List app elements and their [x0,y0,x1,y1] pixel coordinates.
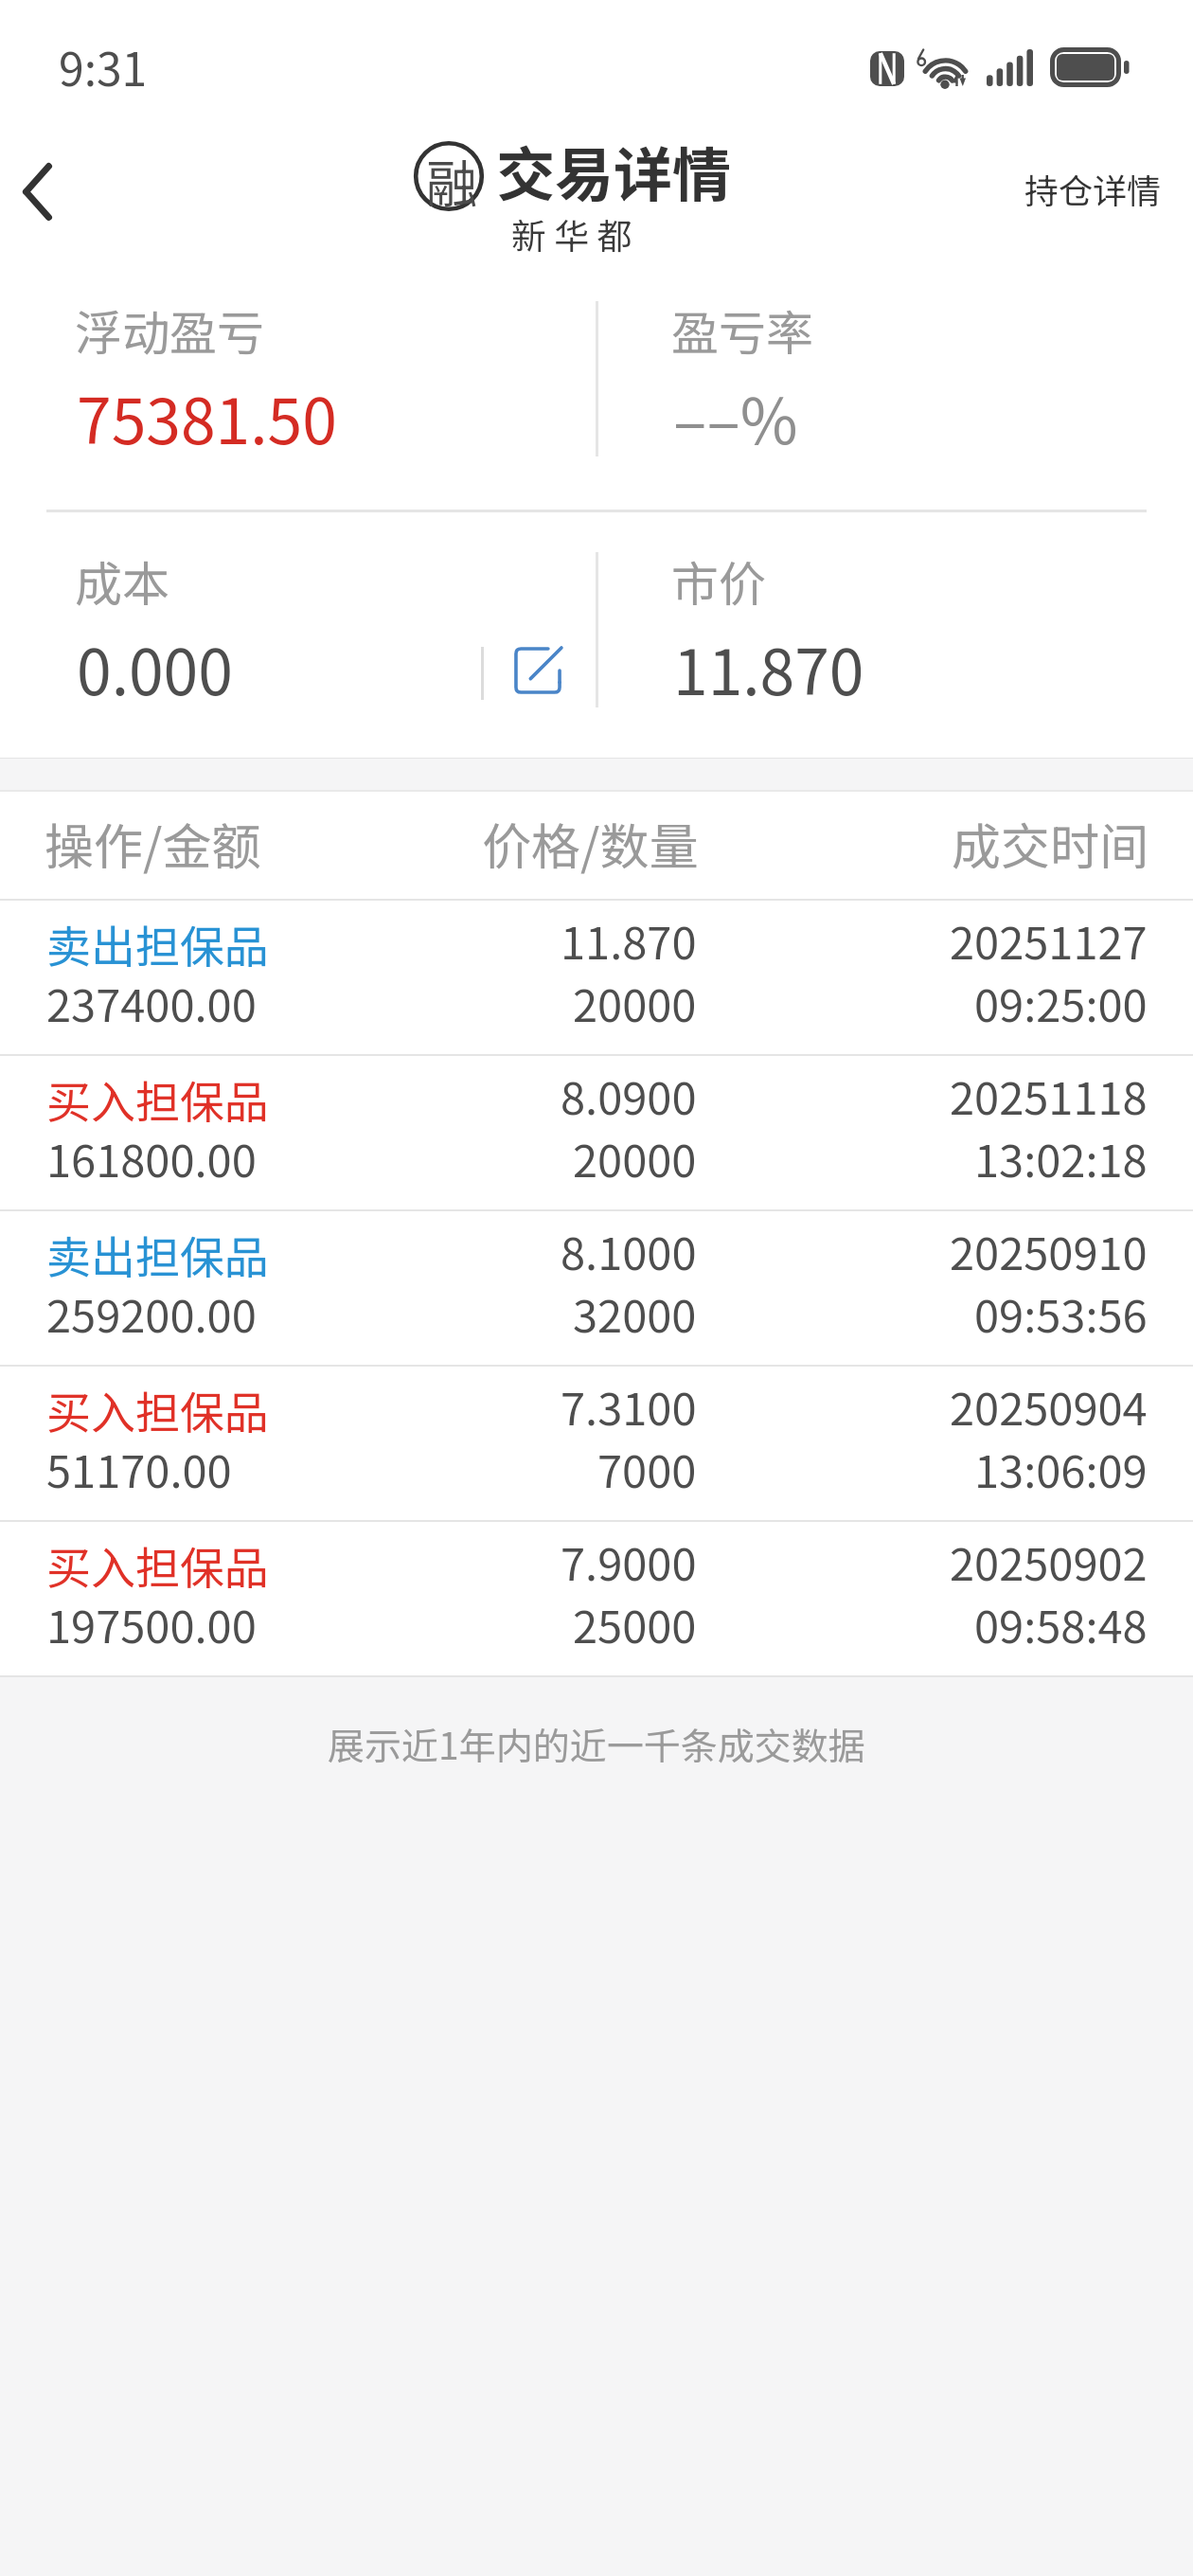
staticText: 161800.00 [46,1125,257,1190]
button[interactable]: 买入担保品 [0,1056,1193,1209]
staticText: 25000 [573,1591,697,1655]
staticText: 75381.50 [77,371,337,462]
staticText: 09:53:56 [974,1280,1148,1345]
staticText: 7000 [597,1436,697,1500]
staticText: 13:06:09 [974,1436,1148,1500]
staticText: 买入担保品 [46,1066,269,1131]
staticText: 持仓详情 [1024,164,1162,213]
staticText: 8.0900 [561,1063,697,1127]
staticText: 20250910 [950,1218,1148,1282]
staticText: 32000 [573,1280,697,1345]
staticText: 237400.00 [46,970,257,1034]
staticText: 买入担保品 [46,1532,269,1597]
button[interactable]: 卖出担保品 [0,1211,1193,1365]
staticText: 卖出担保品 [46,1222,269,1286]
staticText: 20251118 [950,1063,1148,1127]
staticText: ––% [673,371,798,462]
staticText: 20251127 [950,907,1148,972]
button[interactable]: Back [0,125,82,258]
staticText: 8.1000 [561,1218,697,1282]
staticText: 盈亏率 [671,295,813,364]
staticText: 成本 [75,546,169,615]
staticText: 20250902 [950,1529,1148,1593]
staticText: 买入担保品 [46,1377,269,1441]
button[interactable]: Edit cost price [504,636,572,705]
staticText: 0.000 [77,622,233,713]
button[interactable]: 买入担保品 [0,1522,1193,1675]
staticText: 20000 [573,1125,697,1190]
staticText: 价格/数量 [482,808,699,879]
staticText: 11.870 [673,622,864,713]
staticText: 9:31 [59,33,148,99]
staticText: 197500.00 [46,1591,257,1655]
staticText: 20250904 [950,1373,1148,1438]
staticText: 20000 [573,970,697,1034]
staticText: 市价 [671,546,766,615]
button[interactable]: 持仓详情 [989,135,1193,241]
staticText: 展示近1年内的近一千条成交数据 [328,1717,865,1770]
staticText: 交易详情 [496,128,732,213]
staticText: 13:02:18 [974,1125,1148,1190]
staticText: 7.9000 [561,1529,697,1593]
button[interactable]: 买入担保品 [0,1367,1193,1520]
staticText: 浮动盈亏 [75,295,264,364]
staticText: 融 [426,143,477,215]
staticText: 11.870 [561,907,697,972]
staticText: 09:58:48 [974,1591,1148,1655]
button[interactable]: 卖出担保品 [0,901,1193,1054]
staticText: 259200.00 [46,1280,257,1345]
staticText: 成交时间 [952,808,1149,879]
staticText: 卖出担保品 [46,911,269,975]
staticText: 7.3100 [561,1373,697,1438]
staticText: 新 华 都 [511,208,632,259]
staticText: 操作/金额 [45,808,261,879]
staticText: 51170.00 [46,1436,232,1500]
staticText: 09:25:00 [974,970,1148,1034]
